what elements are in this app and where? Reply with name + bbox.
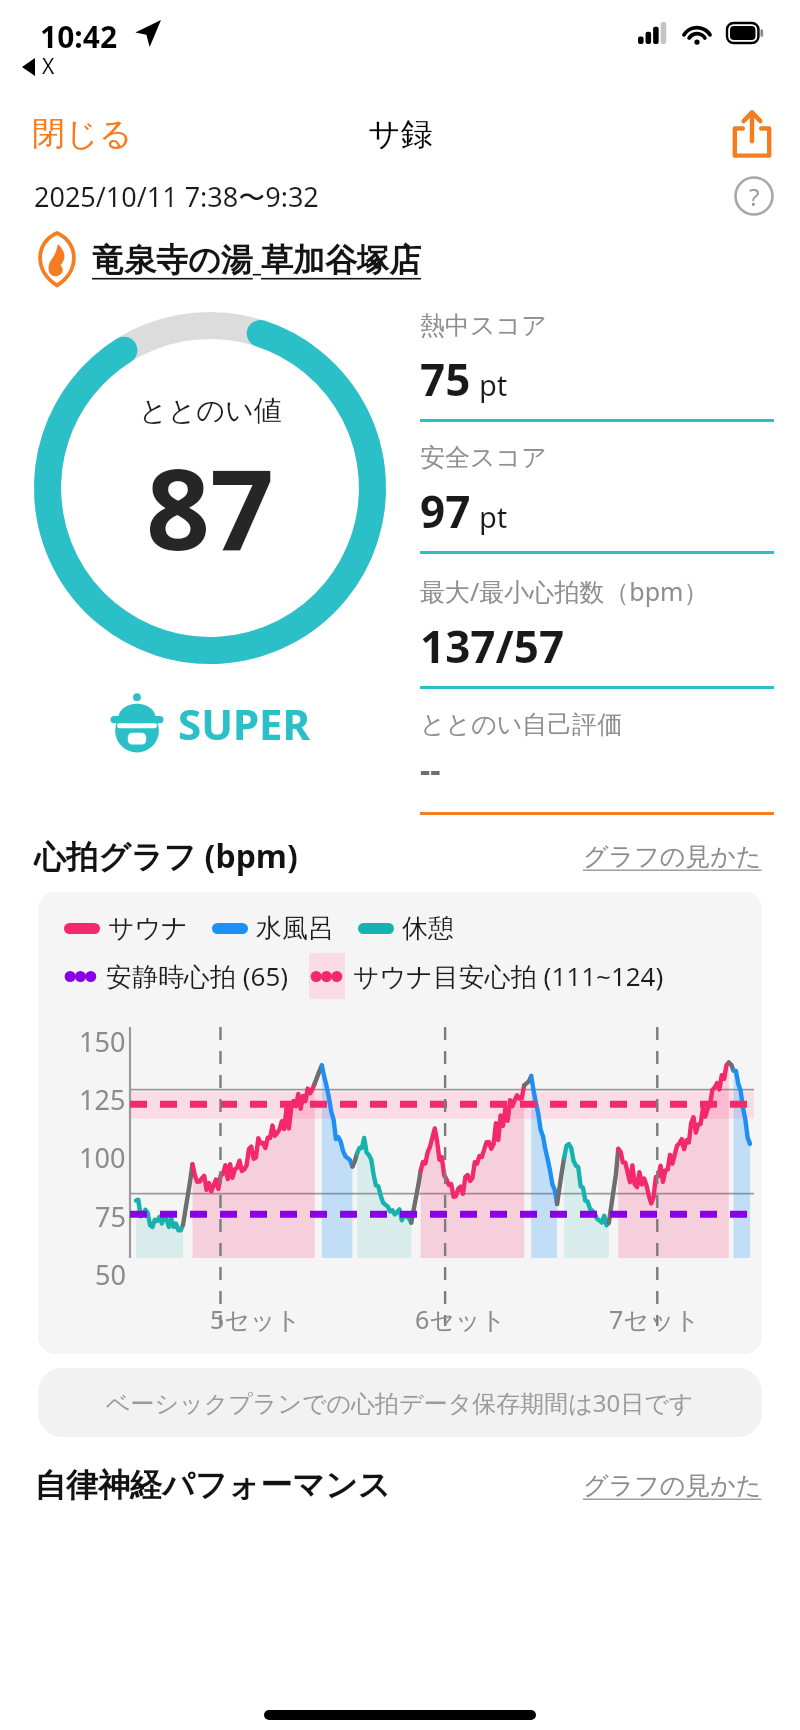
button[interactable]: グラフの見かた (579, 1466, 766, 1505)
staticText: ととのい自己評価 (420, 709, 623, 740)
staticText: ととのい値 (139, 393, 282, 428)
staticText: 10:42 (40, 16, 118, 57)
staticText: 2025/10/11 7:38〜9:32 (34, 178, 319, 215)
staticText: 安全スコア (420, 442, 547, 473)
staticText: 75 (95, 1198, 126, 1235)
staticText: 50 (95, 1256, 126, 1293)
staticText: 休憩 (402, 912, 454, 945)
staticText: 75 (420, 349, 471, 409)
staticText: 心拍グラフ (bpm) (34, 834, 298, 878)
staticText: 最大/最小心拍数（bpm） (420, 574, 709, 608)
button[interactable]: 閉じる (0, 103, 165, 165)
staticText: 97 (420, 481, 471, 541)
staticText: グラフの見かた (583, 1470, 762, 1501)
staticText: サウナ目安心拍 (111~124) (353, 958, 664, 994)
staticText: 7セット (609, 1302, 701, 1336)
staticText: グラフの見かた (583, 841, 762, 872)
staticText: 閉じる (32, 113, 133, 155)
staticText: 150 (79, 1023, 126, 1060)
staticText: 熱中スコア (420, 310, 547, 341)
button[interactable]: Share (704, 103, 800, 165)
staticText: ベーシックプランでの心拍データ保存期間は30日です (106, 1386, 694, 1419)
staticText: 87 (146, 430, 275, 583)
staticText: pt (479, 365, 508, 404)
staticText: 125 (79, 1081, 126, 1118)
staticText: pt (479, 497, 508, 536)
staticText: サウナ (108, 912, 188, 945)
button[interactable]: グラフの見かた (579, 837, 766, 876)
staticText: 安静時心拍 (65) (106, 958, 289, 994)
staticText: 竜泉寺の湯 草加谷塚店 (92, 237, 422, 281)
staticText: サ録 (368, 114, 433, 154)
staticText: 100 (79, 1139, 126, 1176)
staticText: SUPER (178, 695, 311, 752)
staticText: 6セット (415, 1302, 507, 1336)
staticText: 自律神経パフォーマンス (34, 1465, 391, 1505)
staticText: 水風呂 (256, 912, 334, 945)
button[interactable]: ベーシックプランでの心拍データ保存期間は30日です (38, 1368, 762, 1437)
button[interactable]: 竜泉寺の湯 草加谷塚店 (34, 232, 422, 286)
staticText: -- (420, 748, 441, 792)
staticText: X (42, 52, 55, 81)
staticText: 137/57 (420, 616, 565, 676)
staticText: 5セット (210, 1302, 302, 1336)
button[interactable]: Help (734, 176, 774, 216)
staticText: ? (749, 180, 760, 213)
